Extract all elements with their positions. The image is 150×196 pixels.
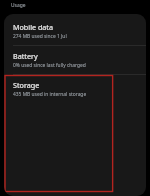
button[interactable]: Storage bbox=[4, 75, 146, 103]
staticText: Battery bbox=[13, 51, 38, 61]
staticText: 0% used since last fully charged bbox=[13, 62, 86, 69]
button[interactable]: Battery bbox=[4, 46, 146, 74]
staticText: Usage bbox=[11, 2, 26, 9]
staticText: 435 MB used in internal storage bbox=[13, 91, 87, 98]
staticText: 274 MB used since 1 Jul bbox=[13, 33, 67, 40]
button[interactable]: Mobile data bbox=[4, 17, 146, 45]
staticText: Storage bbox=[13, 80, 40, 90]
staticText: Mobile data bbox=[13, 22, 53, 32]
